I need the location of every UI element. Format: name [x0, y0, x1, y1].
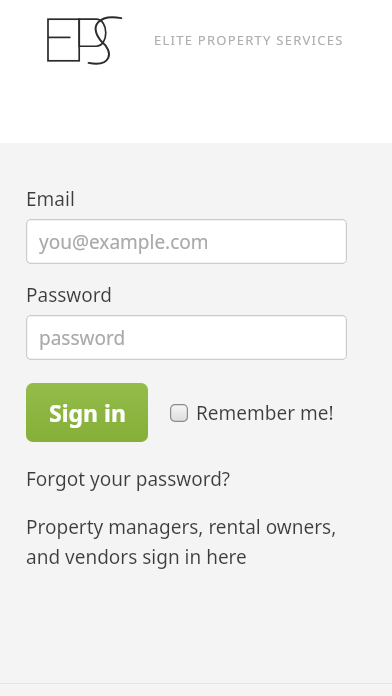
staticText: Password — [26, 282, 112, 308]
staticText: Remember me! — [196, 400, 334, 426]
staticText: password — [39, 325, 126, 351]
button[interactable]: Sign in — [26, 383, 148, 442]
staticText: Property managers, rental owners, and ve… — [26, 514, 347, 569]
other: EPS logo — [48, 14, 126, 66]
button[interactable]: Forgot your password? — [26, 466, 231, 492]
staticText: Sign in — [49, 397, 126, 428]
staticText: Email — [26, 186, 75, 212]
staticText: ELITE PROPERTY SERVICES — [154, 31, 344, 49]
button[interactable]: password — [26, 315, 347, 360]
button[interactable]: you@example.com — [26, 219, 347, 264]
button[interactable]: Remember me checkbox — [170, 400, 334, 426]
button[interactable]: Property managers, rental owners, and ve… — [26, 514, 347, 569]
staticText: Forgot your password? — [26, 466, 231, 492]
staticText: you@example.com — [39, 229, 209, 255]
other: Remember me checkbox — [170, 404, 188, 422]
